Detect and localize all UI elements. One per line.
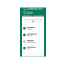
button[interactable] <box>22 39 44 44</box>
button[interactable] <box>22 25 44 31</box>
button[interactable] <box>22 32 44 38</box>
staticText: martes 3 de junio <box>22 15 43 18</box>
button[interactable] <box>22 45 44 51</box>
staticText: Cuidado en Casa <box>23 6 42 15</box>
